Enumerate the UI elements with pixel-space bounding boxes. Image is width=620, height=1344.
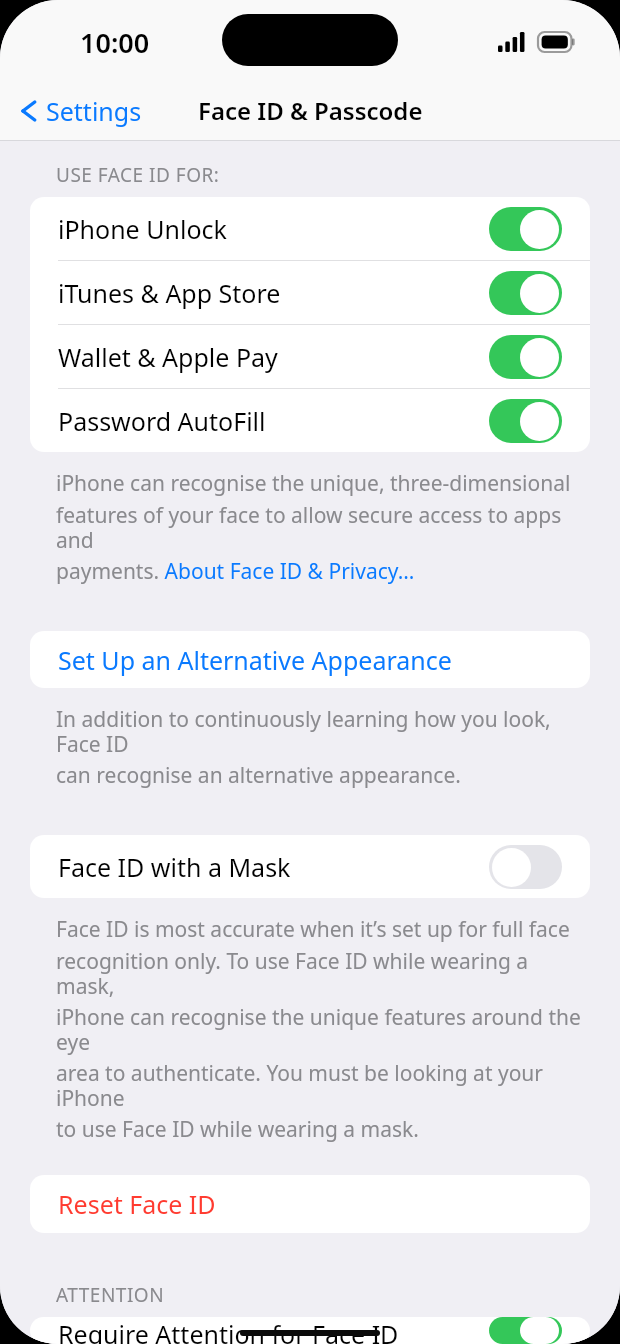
staticText: ATTENTION <box>56 1282 165 1308</box>
staticText: Settings <box>46 94 142 128</box>
staticText: Face ID & Passcode <box>198 94 423 127</box>
button[interactable]: On <box>489 1317 562 1344</box>
staticText: Set Up an Alternative Appearance <box>58 643 452 677</box>
staticText: Wallet & Apple Pay <box>58 340 489 374</box>
button[interactable]: On <box>489 207 562 251</box>
staticText: payments. About Face ID & Privacy… <box>56 557 415 586</box>
button[interactable]: iPhone Unlock <box>30 197 590 260</box>
staticText: Face ID is most accurate when it’s set u… <box>56 915 570 944</box>
button[interactable]: Password AutoFill <box>30 389 590 452</box>
staticText: Reset Face ID <box>58 1187 216 1221</box>
staticText: features of your face to allow secure ac… <box>56 501 586 554</box>
staticText: iTunes & App Store <box>58 276 489 310</box>
button[interactable]: Set Up an Alternative Appearance <box>30 631 590 688</box>
staticText: Password AutoFill <box>58 404 489 438</box>
staticText: to use Face ID while wearing a mask. <box>56 1115 419 1144</box>
staticText: area to authenticate. You must be lookin… <box>56 1059 586 1112</box>
staticText: USE FACE ID FOR: <box>56 162 220 188</box>
staticText: can recognise an alternative appearance. <box>56 761 461 790</box>
staticText: Face ID with a Mask <box>58 850 489 884</box>
button[interactable]: Reset Face ID <box>30 1175 590 1233</box>
staticText: iPhone can recognise the unique features… <box>56 1003 586 1056</box>
button[interactable]: On <box>489 271 562 315</box>
staticText: iPhone can recognise the unique, three-d… <box>56 469 571 498</box>
button[interactable]: Require Attention for Face ID <box>30 1317 590 1344</box>
button[interactable]: payments. About Face ID & Privacy… <box>56 557 415 586</box>
button[interactable]: On <box>489 399 562 443</box>
staticText: Require Attention for Face ID <box>58 1317 489 1344</box>
button[interactable]: Wallet & Apple Pay <box>30 325 590 388</box>
button[interactable]: On <box>489 335 562 379</box>
button[interactable]: iTunes & App Store <box>30 261 590 324</box>
button[interactable]: Face ID with a Mask <box>30 835 590 898</box>
staticText: iPhone Unlock <box>58 212 489 246</box>
button[interactable]: Off <box>489 845 562 889</box>
staticText: In addition to continuously learning how… <box>56 705 586 758</box>
button[interactable]: Settings <box>14 88 152 134</box>
staticText: 10:00 <box>80 24 150 61</box>
staticText: recognition only. To use Face ID while w… <box>56 947 586 1000</box>
